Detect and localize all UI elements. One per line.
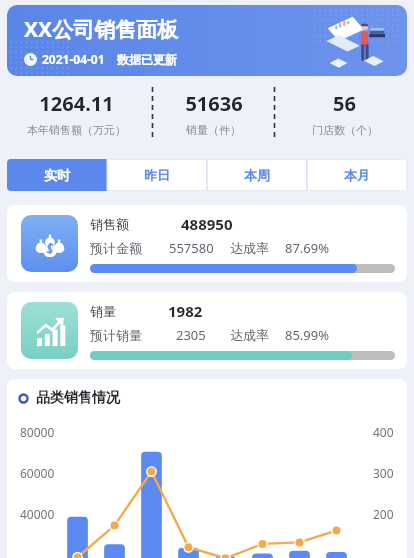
staticText: 预计销量 [90,327,142,343]
staticText: 80000 [20,424,55,440]
button[interactable]: 本周 [207,159,307,191]
button[interactable]: 销量 [7,292,407,369]
button[interactable]: 本月 [307,159,407,191]
staticText: 达成率 [230,240,269,256]
staticText: 557580 [169,239,214,257]
staticText: XX公司销售面板 [24,15,179,44]
staticText: 昨日 [144,167,170,183]
staticText: 销量（件） [186,123,241,137]
staticText: 300 [373,465,394,481]
button[interactable]: 实时 [7,159,107,191]
staticText: 488950 [181,214,233,234]
staticText: 本月 [344,167,370,183]
staticText: 1982 [168,301,203,321]
staticText: 销售额 [90,216,129,232]
staticText: 本年销售额（万元） [27,123,126,137]
staticText: 2021-04-01 [42,51,105,67]
staticText: 实时 [44,167,70,183]
staticText: 400 [373,424,394,440]
staticText: 56 [333,90,356,117]
staticText: 门店数（个） [312,123,378,137]
staticText: 品类销售情况 [36,389,120,407]
staticText: 达成率 [230,327,269,343]
staticText: 51636 [185,90,243,117]
staticText: 87.69% [285,239,330,257]
staticText: 40000 [20,506,55,522]
staticText: 2305 [176,326,206,344]
staticText: 1264.11 [39,90,114,117]
staticText: 60000 [20,465,55,481]
staticText: 85.99% [285,326,330,344]
staticText: 预计金额 [90,240,142,256]
button[interactable]: 昨日 [107,159,207,191]
staticText: 销量 [90,303,116,319]
button[interactable]: XX公司销售面板 [7,5,407,76]
staticText: 本周 [244,167,270,183]
staticText: 数据已更新 [117,52,177,67]
button[interactable]: 销售额 [7,205,407,282]
staticText: 200 [373,506,394,522]
